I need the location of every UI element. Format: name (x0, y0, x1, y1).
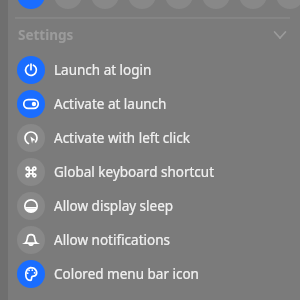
button[interactable]: Colored menu bar icon (0, 257, 300, 291)
button[interactable]: Launch at login (0, 53, 300, 87)
staticText: Settings (18, 26, 74, 44)
staticText: Launch at login (54, 61, 152, 79)
staticText: Colored menu bar icon (54, 265, 199, 283)
staticText: Global keyboard shortcut (54, 163, 215, 181)
staticText: Allow display sleep (54, 197, 174, 215)
other: Collapse Settings (266, 21, 294, 49)
button[interactable]: Activate at launch (0, 87, 300, 121)
button[interactable]: Settings (0, 21, 300, 49)
button[interactable]: Allow notifications (0, 223, 300, 257)
button[interactable]: Global keyboard shortcut (0, 155, 300, 189)
staticText: Activate with left click (54, 129, 190, 147)
button[interactable]: Activate with left click (0, 121, 300, 155)
staticText: Allow notifications (54, 231, 170, 249)
button[interactable]: Allow display sleep (0, 189, 300, 223)
staticText: Activate at launch (54, 95, 167, 113)
